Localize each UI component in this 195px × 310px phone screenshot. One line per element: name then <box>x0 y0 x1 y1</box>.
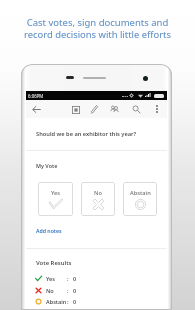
button[interactable]: No <box>81 182 115 216</box>
button[interactable]: Add notes <box>32 224 66 237</box>
staticText: Vote Results <box>36 259 72 267</box>
button[interactable]: Share <box>108 103 121 116</box>
button[interactable]: Search <box>130 103 143 116</box>
staticText: 0 <box>73 298 77 305</box>
staticText: Abstain <box>46 298 67 305</box>
staticText: No <box>46 287 54 294</box>
staticText: Yes <box>51 189 61 197</box>
staticText: Abstain <box>130 189 151 197</box>
staticText: record decisions with little efforts <box>0 28 195 41</box>
staticText: 0 <box>73 287 77 294</box>
button[interactable]: More options <box>151 103 162 114</box>
staticText: No <box>94 189 102 197</box>
button[interactable]: Yes <box>38 182 73 216</box>
staticText: Add notes <box>36 227 62 234</box>
staticText: Should we be an exhibitor this year? <box>36 130 137 138</box>
staticText: Yes <box>46 275 55 282</box>
button[interactable]: Should we be an exhibitor this year? <box>26 118 167 150</box>
button[interactable]: Present <box>70 104 82 116</box>
staticText: My Vote <box>36 162 58 169</box>
button[interactable]: Back <box>30 103 42 115</box>
button[interactable]: Edit <box>88 103 101 116</box>
staticText: : <box>67 298 69 305</box>
staticText: Cast votes, sign documents and <box>0 16 195 29</box>
staticText: : <box>67 275 69 282</box>
staticText: 6:06PM <box>28 93 44 99</box>
button[interactable]: Abstain <box>123 182 157 216</box>
staticText: 0 <box>73 275 77 282</box>
staticText: : <box>67 287 69 294</box>
